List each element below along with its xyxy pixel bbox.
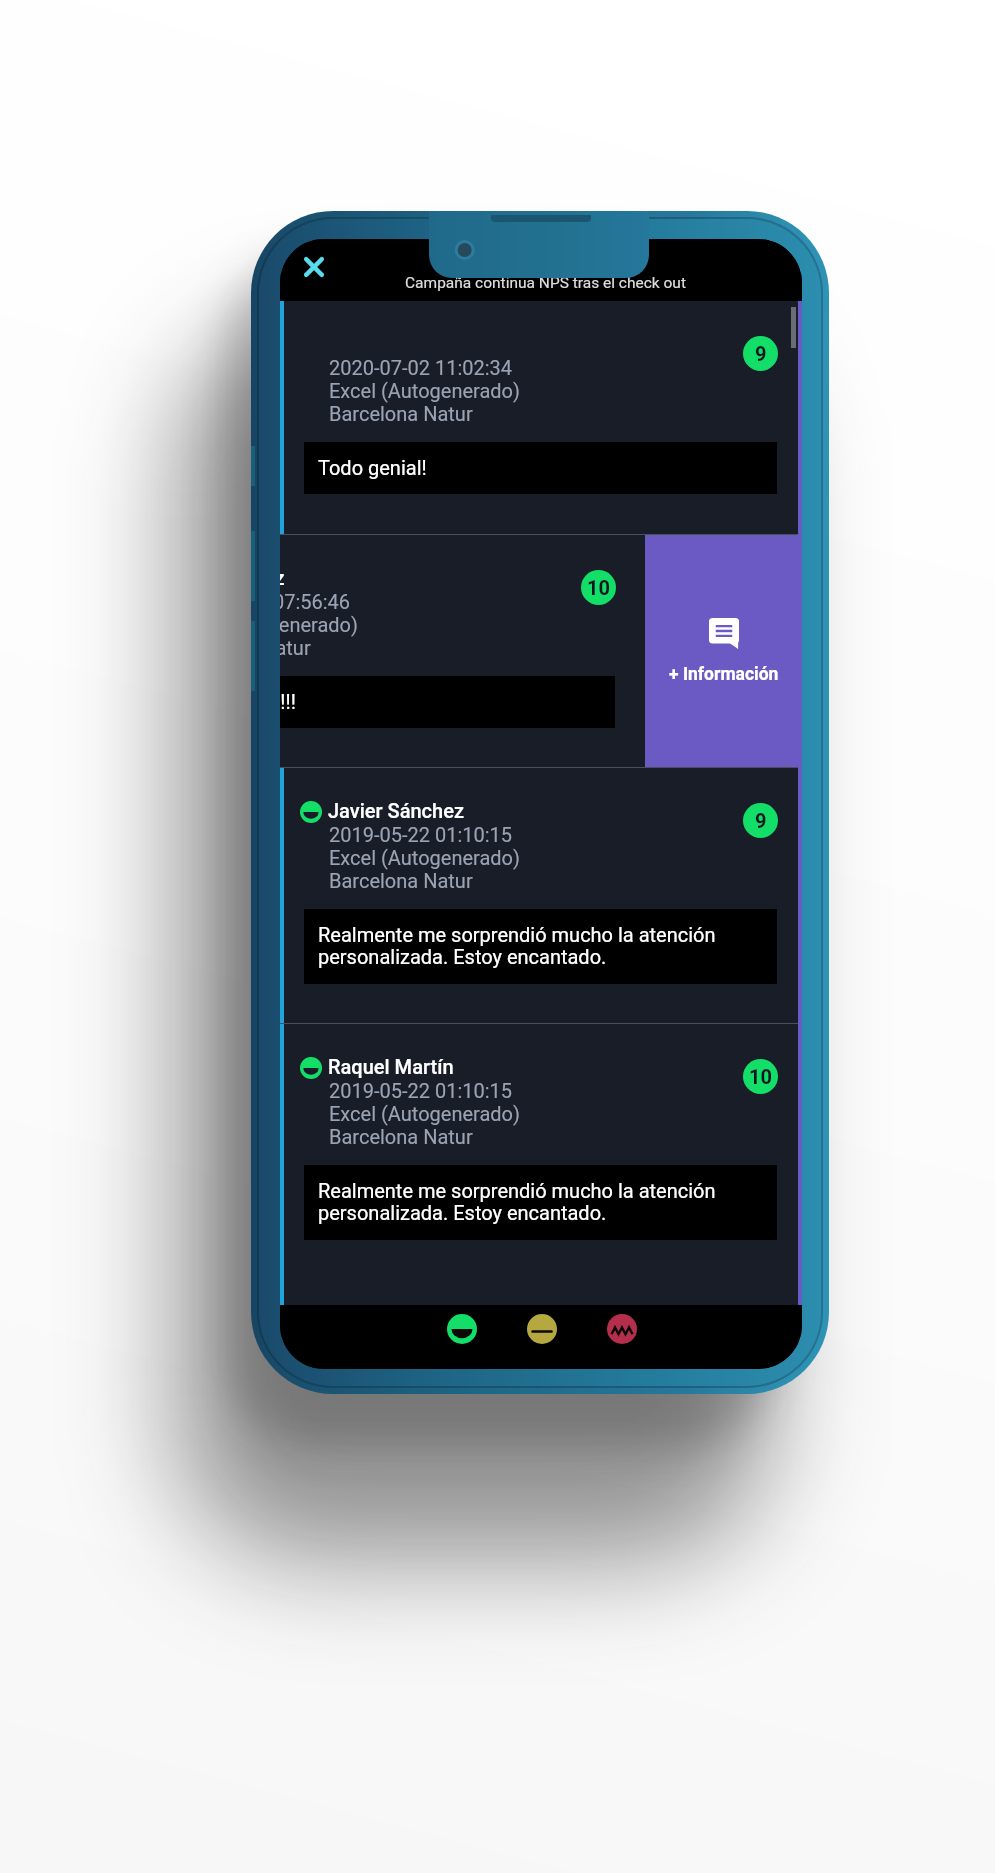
- staticText: Raquel Martín: [328, 1055, 454, 1078]
- staticText: Excel (Autogenerado): [329, 379, 520, 402]
- staticText: Barcelona Natur: [280, 636, 311, 659]
- button[interactable]: + Información: [645, 535, 802, 767]
- button[interactable]: Pasivo: [527, 1314, 557, 1344]
- button[interactable]: Promotor: [447, 1314, 477, 1344]
- button[interactable]: Javier Sánchez: [280, 768, 802, 1023]
- staticText: 2020-07-02 11:02:34: [329, 356, 513, 379]
- button[interactable]: Cerrar: [300, 253, 328, 281]
- button[interactable]: 2020-07-02 11:02:34: [280, 301, 802, 534]
- staticText: Realmente me sorprendió mucho la atenció…: [318, 923, 765, 969]
- staticText: Barcelona Natur: [329, 1125, 473, 1148]
- staticText: Excel (Autogenerado): [329, 846, 520, 869]
- staticText: Javier Sánchez: [328, 799, 464, 822]
- staticText: Campaña continua NPS tras el check out: [405, 274, 686, 292]
- button[interactable]: Laura Gómez: [280, 535, 802, 767]
- button[interactable]: Raquel Martín: [280, 1024, 802, 1305]
- staticText: 2019-05-22 01:10:15: [329, 823, 513, 846]
- staticText: Excel (Autogenerado): [280, 613, 358, 636]
- staticText: 10: [749, 1065, 772, 1088]
- staticText: Barcelona Natur: [329, 869, 473, 892]
- staticText: Realmente me sorprendió mucho la atenció…: [318, 1179, 765, 1225]
- staticText: 10: [587, 576, 610, 599]
- staticText: 2019-05-22 01:10:15: [329, 1079, 513, 1102]
- button[interactable]: Detractor: [607, 1314, 637, 1344]
- staticText: Barcelona Natur: [329, 402, 473, 425]
- staticText: Todo genial!: [318, 456, 427, 479]
- staticText: + Información: [669, 664, 779, 685]
- staticText: Todo perfecto!!!: [280, 690, 296, 713]
- staticText: 2020-04-18 07:56:46: [280, 590, 351, 613]
- staticText: 9: [755, 809, 767, 832]
- staticText: Laura Gómez: [280, 566, 285, 589]
- staticText: Excel (Autogenerado): [329, 1102, 520, 1125]
- staticText: 9: [755, 342, 767, 365]
